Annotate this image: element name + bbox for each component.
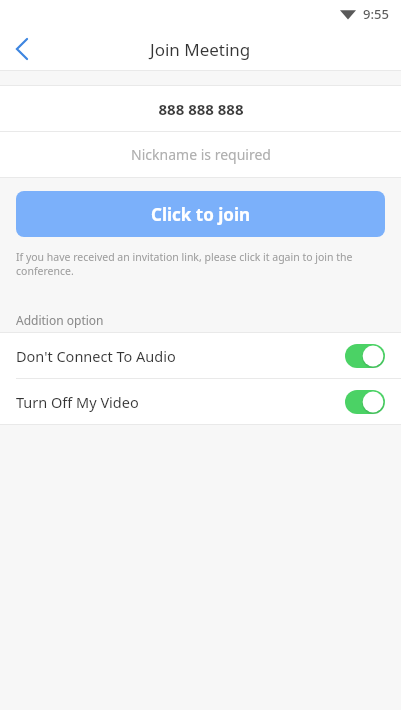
staticText: Join Meeting	[150, 38, 251, 61]
staticText: 9:55	[363, 5, 389, 23]
button[interactable]: 888 888 888	[0, 86, 401, 131]
button[interactable]: Nickname is required	[0, 132, 401, 177]
staticText: 888 888 888	[158, 99, 244, 119]
staticText: Don't Connect To Audio	[16, 346, 345, 366]
button[interactable]: Back	[0, 28, 44, 70]
staticText: Addition option	[16, 312, 104, 328]
button[interactable]: Click to join	[16, 191, 385, 237]
staticText: Turn Off My Video	[16, 392, 345, 412]
staticText: If you have received an invitation link,…	[16, 250, 385, 278]
button[interactable]: Don't Connect To Audio	[0, 333, 401, 378]
button[interactable]: Turn Off My Video	[0, 379, 401, 424]
staticText: Click to join	[151, 203, 251, 226]
staticText: Nickname is required	[131, 145, 271, 164]
